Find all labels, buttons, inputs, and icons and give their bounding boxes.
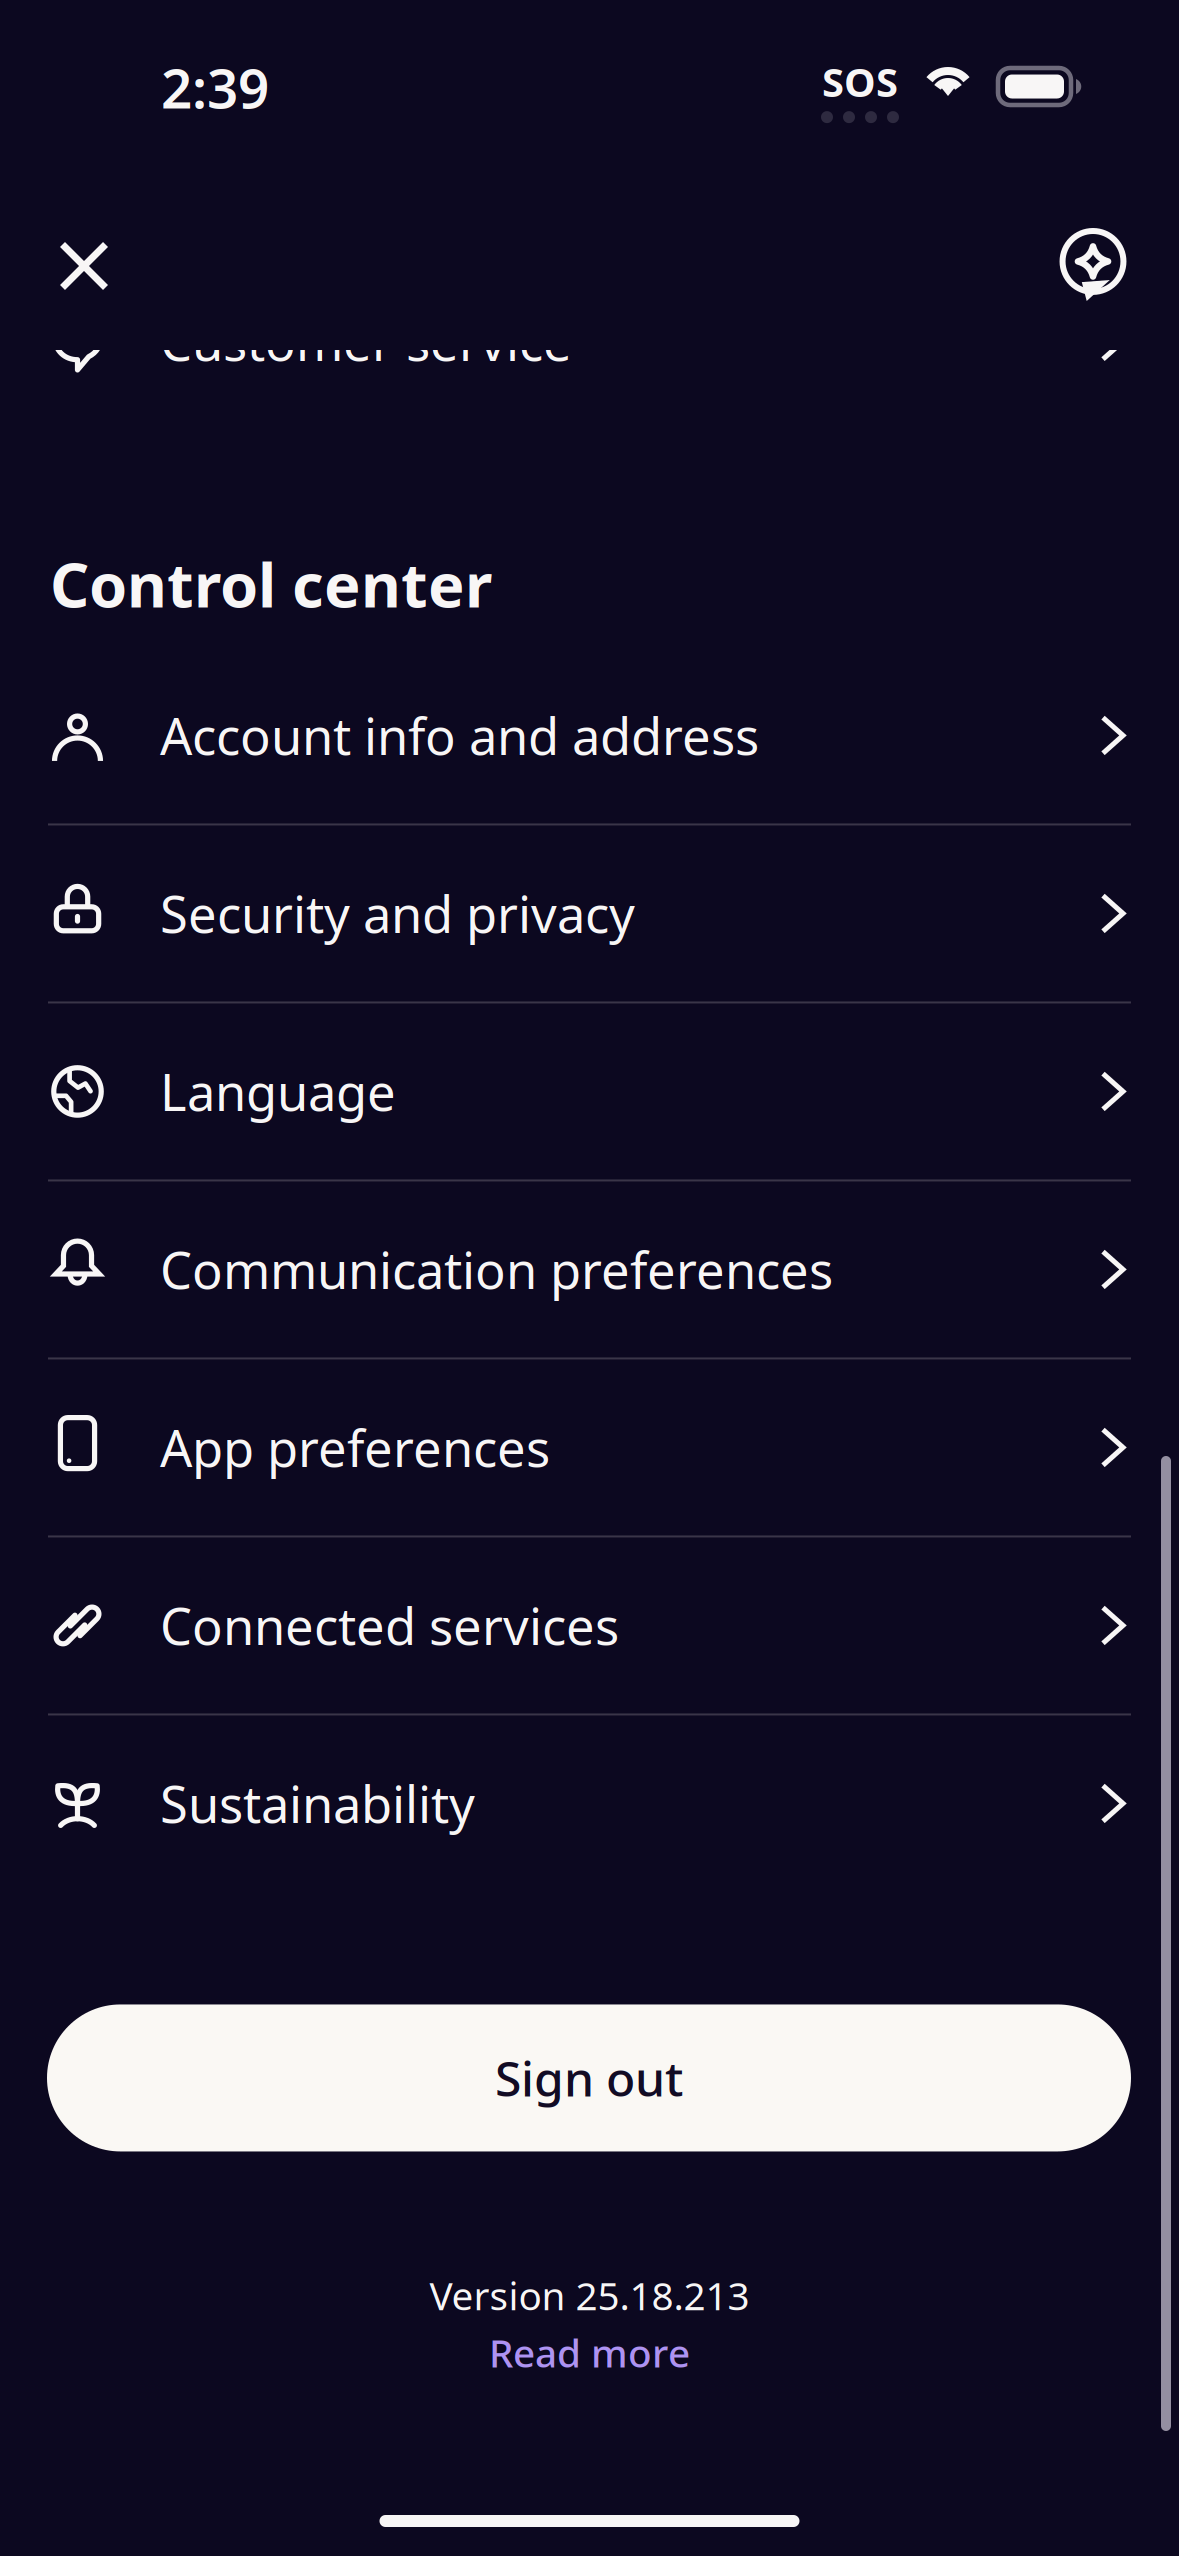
button[interactable]: Sustainability — [0, 1715, 1179, 1891]
staticText: Communication preferences — [160, 1236, 833, 1303]
staticText: 2:39 — [161, 51, 269, 124]
button[interactable]: Connected services — [0, 1537, 1179, 1713]
button[interactable]: Sign out — [47, 2004, 1131, 2151]
button[interactable]: Close — [0, 171, 133, 313]
staticText: Version 25.18.213 — [429, 2269, 749, 2321]
staticText: Account info and address — [160, 702, 759, 769]
button[interactable]: Communication preferences — [0, 1181, 1179, 1357]
button[interactable]: App preferences — [0, 1359, 1179, 1535]
staticText: Security and privacy — [160, 880, 635, 947]
button[interactable]: Security and privacy — [0, 825, 1179, 1001]
staticText: Connected services — [160, 1592, 619, 1659]
staticText: Language — [160, 1058, 396, 1125]
staticText: Read more — [489, 2327, 690, 2378]
button[interactable]: Read more — [489, 2327, 690, 2378]
staticText: Sustainability — [160, 1770, 475, 1837]
button[interactable]: Assistant — [1034, 171, 1179, 313]
button[interactable]: Account info and address — [0, 647, 1179, 823]
staticText: SOS — [822, 55, 898, 108]
button[interactable]: Language — [0, 1003, 1179, 1179]
staticText: Sign out — [495, 2046, 683, 2110]
staticText: Customer service — [160, 308, 572, 375]
staticText: Control center — [50, 543, 492, 624]
staticText: App preferences — [160, 1414, 550, 1481]
